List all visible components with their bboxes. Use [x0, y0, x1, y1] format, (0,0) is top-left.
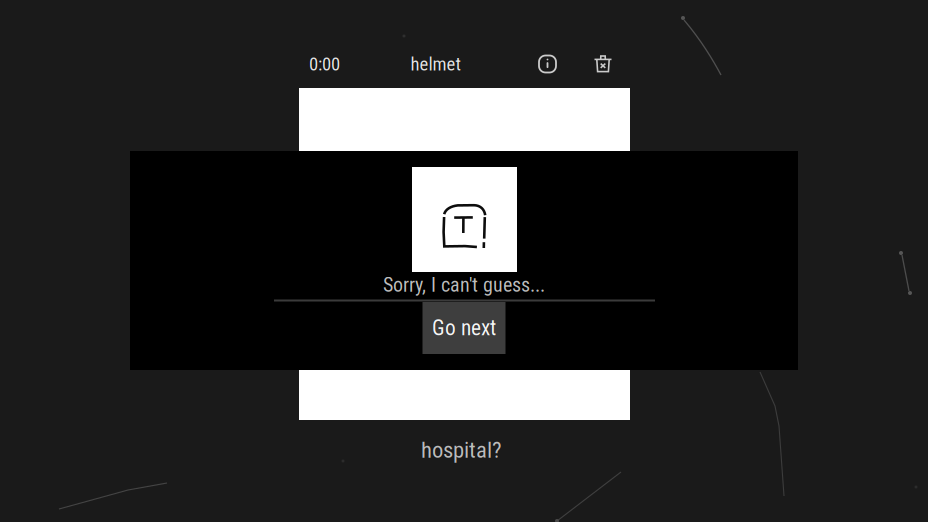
staticText: helmet	[410, 53, 461, 75]
staticText: 0:00	[309, 53, 340, 75]
button[interactable]: Go next	[422, 302, 505, 354]
staticText: Sorry, I can't guess...	[383, 273, 545, 297]
button[interactable]: Clear drawing	[586, 47, 620, 81]
staticText: Go next	[432, 315, 496, 340]
staticText: hospital?	[421, 437, 502, 463]
button[interactable]: Info	[530, 47, 564, 81]
